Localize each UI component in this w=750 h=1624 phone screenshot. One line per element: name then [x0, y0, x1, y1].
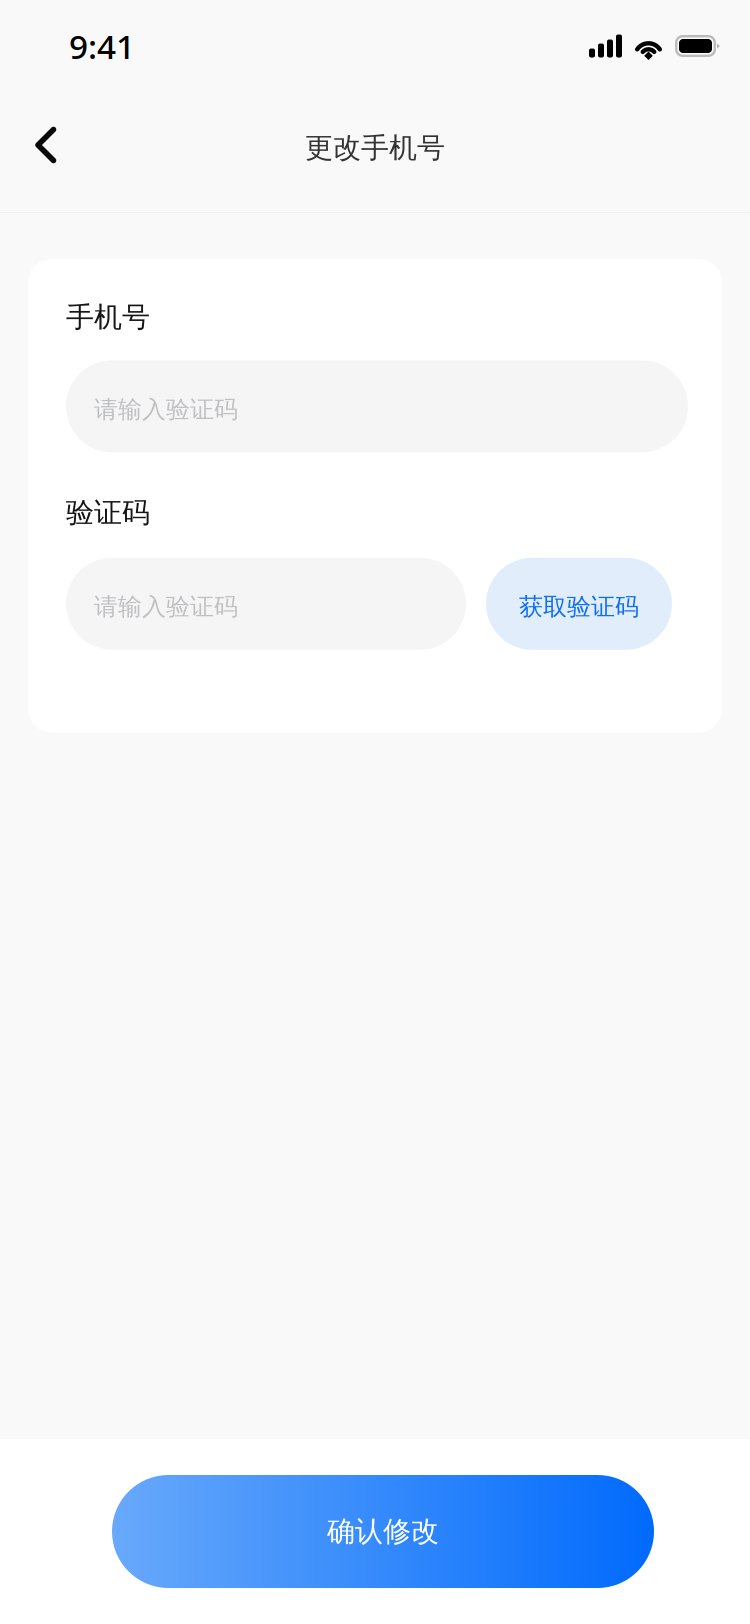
staticText: 手机号: [66, 300, 150, 334]
staticText: 更改手机号: [305, 131, 445, 165]
button[interactable]: 获取验证码: [486, 558, 672, 650]
staticText: 获取验证码: [519, 592, 639, 621]
button[interactable]: 请输入验证码: [66, 558, 466, 650]
staticText: 请输入验证码: [94, 592, 238, 621]
staticText: 验证码: [66, 495, 150, 530]
button[interactable]: 请输入验证码: [66, 360, 688, 452]
staticText: 确认修改: [327, 1514, 439, 1549]
button[interactable]: Back: [0, 98, 82, 206]
staticText: 9:41: [69, 24, 135, 68]
button[interactable]: 确认修改: [112, 1475, 654, 1588]
staticText: 请输入验证码: [94, 395, 238, 424]
